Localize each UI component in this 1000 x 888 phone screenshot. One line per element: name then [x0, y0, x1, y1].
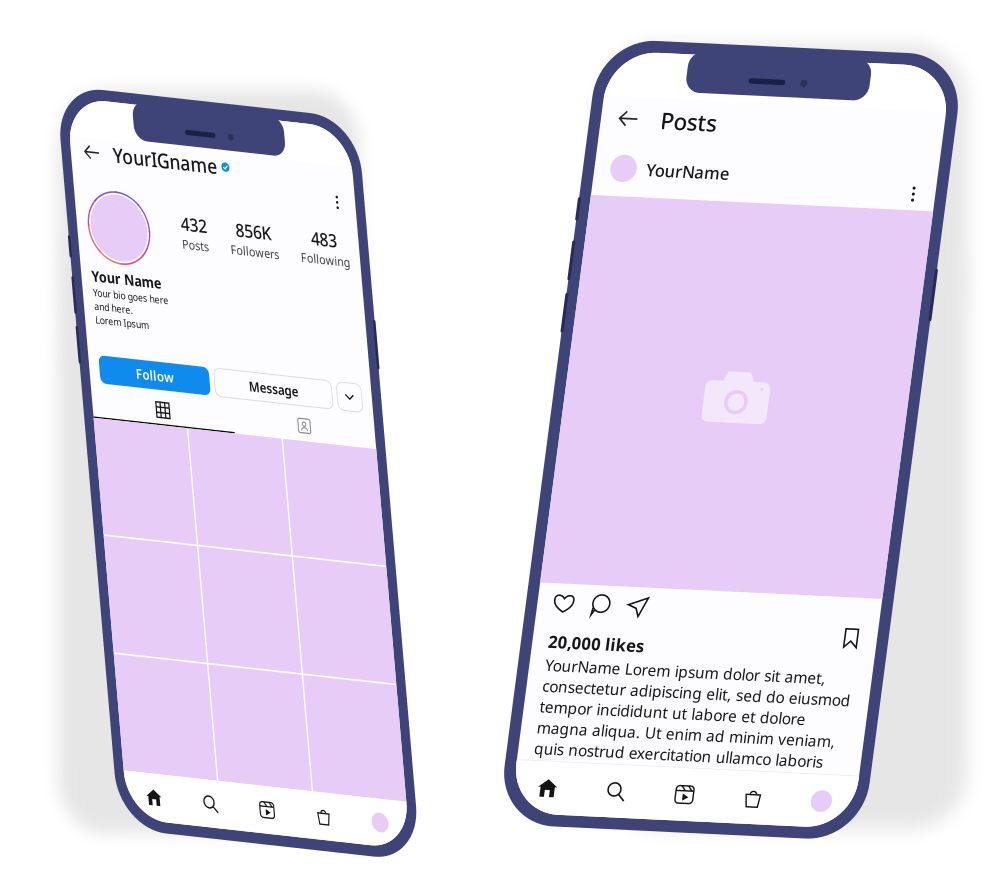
button[interactable]: Shop — [247, 818, 325, 839]
button[interactable]: Home — [13, 818, 91, 839]
staticText: 856K — [233, 133, 282, 161]
button[interactable]: Save — [362, 598, 403, 659]
staticText: 20,000 likes — [31, 654, 140, 679]
staticText: YourIGname — [71, 59, 215, 91]
button[interactable]: Reels — [169, 817, 247, 839]
button[interactable]: Reels — [169, 818, 247, 839]
staticText: YourName — [72, 130, 167, 154]
button[interactable]: Profile — [325, 817, 403, 840]
staticText: Following — [321, 161, 389, 181]
button[interactable]: Tagged view — [208, 361, 403, 388]
staticText: 483 — [337, 133, 373, 161]
button[interactable]: Home — [13, 817, 91, 839]
staticText: Posts — [157, 161, 194, 181]
button[interactable]: More — [355, 314, 389, 347]
button[interactable]: Shop — [247, 817, 325, 839]
staticText: Followers — [224, 161, 291, 181]
button[interactable]: Search — [91, 818, 169, 839]
staticText: Your Name — [27, 209, 123, 232]
staticText: and here. — [27, 248, 80, 264]
button[interactable]: Search — [91, 817, 169, 839]
staticText: Follow — [77, 320, 129, 341]
staticText: Posts — [81, 70, 145, 104]
staticText: YourName Lorem ipsum dolor sit amet, con… — [31, 681, 382, 796]
staticText: Lorem Ipsum — [27, 264, 101, 280]
staticText: Your bio goes here — [27, 232, 131, 248]
button[interactable]: Profile — [325, 816, 403, 840]
staticText: 432 — [157, 133, 193, 161]
button[interactable]: Grid view — [13, 361, 208, 388]
button[interactable]: Follow — [27, 314, 179, 347]
